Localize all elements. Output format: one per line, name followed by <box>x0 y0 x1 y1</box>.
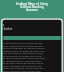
button[interactable] <box>3 36 61 40</box>
button[interactable]: App icon <box>2 24 4 26</box>
button[interactable]: Chatbot app preview <box>0 0 64 72</box>
staticText: Endless Ways of Using & Mind-Bending Ans… <box>16 2 48 12</box>
staticText: Chatbot <box>2 27 13 31</box>
